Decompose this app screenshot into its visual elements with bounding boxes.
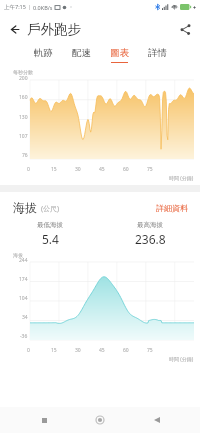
button[interactable]: Back: [144, 407, 170, 433]
button[interactable]: 詳情: [139, 44, 175, 66]
staticText: 236.8: [135, 231, 166, 247]
staticText: 詳細資料: [156, 203, 188, 213]
button[interactable]: 軌跡: [25, 44, 61, 66]
staticText: 30: [75, 166, 81, 173]
staticText: 0: [27, 347, 30, 354]
staticText: 34: [22, 314, 28, 321]
staticText: 最高海拔: [137, 221, 163, 229]
staticText: 130: [19, 114, 28, 121]
staticText: 時間 (分鐘): [169, 175, 194, 182]
staticText: 75: [147, 166, 153, 173]
staticText: 圖表: [110, 47, 129, 59]
staticText: 上午7:15: [4, 3, 26, 11]
staticText: 160: [19, 94, 28, 101]
staticText: 107: [19, 133, 28, 140]
button[interactable]: Share: [175, 19, 195, 39]
staticText: 174: [19, 276, 28, 283]
staticText: 30: [75, 347, 81, 354]
staticText: 詳情: [148, 47, 167, 59]
staticText: 海拔: [13, 252, 23, 258]
staticText: 45: [99, 347, 105, 354]
staticText: -36: [20, 333, 28, 340]
button[interactable]: 圖表: [101, 44, 137, 66]
staticText: 海拔: [13, 200, 37, 215]
staticText: 戶外跑步: [27, 21, 81, 38]
staticText: 每秒分數: [13, 69, 33, 75]
staticText: 244: [19, 257, 28, 264]
button[interactable]: 配速: [63, 44, 99, 66]
staticText: 配速: [72, 47, 91, 59]
button[interactable]: Home: [87, 407, 113, 433]
staticText: 0: [27, 166, 30, 173]
staticText: |: [28, 4, 31, 11]
staticText: 200: [19, 75, 28, 82]
button[interactable]: Back: [4, 19, 24, 39]
staticText: 15: [51, 347, 57, 354]
staticText: 0.0KB/s: [33, 4, 53, 11]
staticText: 104: [19, 295, 28, 302]
staticText: 時間 (分鐘): [169, 356, 194, 363]
button[interactable]: Recents: [31, 407, 57, 433]
staticText: 最低海拔: [37, 221, 63, 229]
staticText: 5.4: [42, 231, 59, 247]
staticText: 76: [22, 152, 28, 159]
staticText: 15: [51, 166, 57, 173]
staticText: 軌跡: [34, 47, 53, 59]
staticText: 75: [147, 347, 153, 354]
button[interactable]: 詳細資料: [154, 201, 190, 215]
staticText: 45: [99, 166, 105, 173]
staticText: 60: [123, 166, 129, 173]
staticText: (公尺): [41, 204, 60, 214]
staticText: 60: [123, 347, 129, 354]
